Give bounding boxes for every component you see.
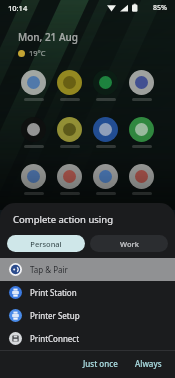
staticText: PrintConnect (30, 333, 80, 344)
staticText: 85% (153, 3, 167, 13)
button[interactable]: Printer (0, 281, 175, 304)
staticText: Printer Setup (30, 310, 80, 321)
button[interactable]: Always (130, 355, 167, 372)
button[interactable]: Personal (7, 235, 85, 252)
staticText: 10:14 (8, 3, 28, 13)
staticText: Mon, 21 Aug (18, 30, 78, 44)
button[interactable]: PrintConnect (0, 327, 175, 350)
staticText: Work (120, 239, 139, 249)
staticText: Tap & Pair (30, 264, 68, 275)
button[interactable]: Work (90, 235, 168, 252)
other: PrintConnect (9, 332, 22, 345)
staticText: Just once (83, 358, 118, 369)
other: Printer (9, 286, 22, 299)
button[interactable]: Printer (0, 304, 175, 327)
other: Tap & Pair (9, 263, 22, 276)
staticText: Personal (30, 239, 62, 249)
other: Printer (9, 309, 22, 322)
staticText: Print Station (30, 287, 77, 298)
staticText: Complete action using (13, 213, 113, 226)
button[interactable]: Just once (78, 355, 123, 372)
staticText: 19°C (29, 48, 46, 58)
button[interactable]: Tap & Pair (0, 258, 175, 281)
staticText: Always (135, 358, 162, 369)
